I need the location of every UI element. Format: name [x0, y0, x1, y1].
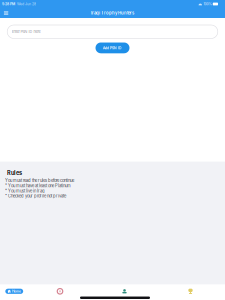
button[interactable]: Menu	[0, 8, 12, 17]
staticText: * You must have at least one Platinum	[5, 183, 71, 188]
staticText: Iraqi Trophy Hunters	[91, 10, 134, 16]
staticText: 100%	[203, 2, 211, 6]
staticText: * You must live in Iraq	[5, 188, 45, 193]
staticText: Home	[12, 289, 21, 293]
button[interactable]: Profile	[90, 288, 159, 295]
staticText: * Checked your profile not private	[5, 194, 66, 199]
button[interactable]: Live	[30, 288, 90, 295]
staticText: Add PSN ID	[103, 46, 122, 50]
button[interactable]: Trophies	[159, 288, 222, 295]
staticText: Enter PSN ID here	[11, 29, 40, 34]
staticText: 5:28 PM	[2, 2, 15, 6]
staticText: You must read the rules before continue	[5, 178, 74, 183]
button[interactable]: Enter PSN ID here	[7, 25, 218, 38]
button[interactable]: Add PSN ID	[95, 42, 129, 53]
staticText: Wed Jun 28	[15, 2, 36, 6]
button[interactable]: Home	[0, 288, 30, 295]
staticText: Rules	[7, 170, 22, 176]
